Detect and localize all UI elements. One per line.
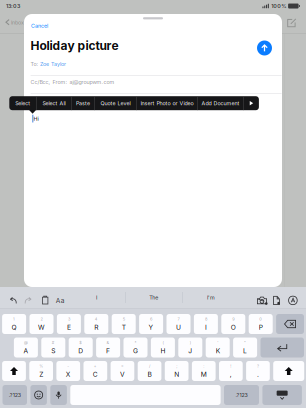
staticText: Select All: [42, 100, 65, 106]
staticText: ,: [230, 370, 232, 378]
button[interactable]: Select: [9, 96, 36, 110]
button[interactable]: Cc/Bcc, From: aj@groupwm.com: [30, 78, 116, 86]
button[interactable]: *: [123, 337, 147, 357]
button[interactable]: Quote Level: [95, 96, 136, 110]
button[interactable]: 0: [249, 314, 273, 334]
staticText: :: [203, 364, 204, 368]
staticText: J: [188, 347, 192, 355]
staticText: G: [133, 347, 138, 355]
button[interactable]: Numbers: [224, 385, 259, 405]
staticText: Insert Photo or Video: [140, 100, 193, 106]
button[interactable]: Select All: [37, 96, 71, 110]
staticText: *: [134, 340, 136, 345]
staticText: ;: [176, 364, 177, 368]
button[interactable]: Dictation: [50, 385, 67, 405]
button[interactable]: 5: [112, 314, 136, 334]
staticText: 13:03: [6, 3, 20, 9]
button[interactable]: Zoe Taylor: [39, 60, 67, 68]
staticText: X: [66, 370, 71, 378]
staticText: O: [231, 323, 236, 331]
button[interactable]: +: [83, 361, 107, 381]
button[interactable]: Cancel: [24, 21, 55, 31]
staticText: @: [24, 340, 28, 345]
staticText: K: [216, 347, 220, 355]
staticText: ": [244, 340, 246, 345]
button[interactable]: Camera: [256, 293, 268, 307]
button[interactable]: Hide keyboard: [262, 385, 302, 405]
staticText: S: [51, 347, 55, 355]
staticText: To:: [31, 61, 39, 67]
button[interactable]: @: [14, 337, 38, 357]
button[interactable]: -: [56, 361, 80, 381]
staticText: 4: [95, 317, 98, 321]
button[interactable]: ": [233, 337, 257, 357]
button[interactable]: Documents: [272, 293, 281, 307]
staticText: H: [160, 347, 165, 355]
button[interactable]: Emoji: [30, 385, 47, 405]
button[interactable]: :: [192, 361, 216, 381]
button[interactable]: Numbers: [2, 385, 27, 405]
staticText: &: [107, 340, 110, 345]
staticText: E: [67, 323, 71, 331]
staticText: 6: [150, 317, 152, 321]
button[interactable]: ?: [246, 361, 270, 381]
button[interactable]: $: [69, 337, 93, 357]
staticText: Y: [149, 323, 154, 331]
button[interactable]: ': [206, 337, 230, 357]
button[interactable]: Formatting: [54, 293, 66, 307]
button[interactable]: #: [41, 337, 65, 357]
button[interactable]: 7: [166, 314, 190, 334]
button[interactable]: %: [29, 361, 53, 381]
staticText: V: [120, 370, 125, 378]
staticText: Zoe Taylor: [40, 61, 66, 67]
button[interactable]: Delete: [276, 314, 304, 334]
staticText: N: [174, 370, 179, 378]
button[interactable]: /: [138, 361, 161, 381]
button[interactable]: 6: [139, 314, 163, 334]
button[interactable]: Paste: [40, 293, 51, 307]
button[interactable]: 1: [2, 314, 26, 334]
button[interactable]: Redo: [22, 293, 35, 307]
button[interactable]: 3: [57, 314, 81, 334]
staticText: Quote Level: [100, 100, 130, 106]
staticText: 100%: [271, 3, 286, 9]
button[interactable]: I'm: [183, 287, 240, 308]
staticText: 0: [259, 317, 262, 321]
button[interactable]: Insert Photo or Video: [137, 96, 197, 110]
staticText: =: [121, 364, 124, 368]
button[interactable]: More: [244, 96, 259, 110]
button[interactable]: ;: [165, 361, 188, 381]
staticText: 5: [123, 317, 125, 321]
button[interactable]: The: [125, 287, 182, 308]
button[interactable]: I: [68, 287, 125, 308]
button[interactable]: Markup: [288, 293, 297, 307]
staticText: !: [230, 364, 231, 368]
button[interactable]: 2: [29, 314, 53, 334]
button[interactable]: Send: [257, 40, 272, 55]
button[interactable]: Shift: [2, 361, 26, 381]
button[interactable]: 9: [221, 314, 245, 334]
staticText: Paste: [76, 100, 90, 106]
staticText: -: [67, 364, 69, 368]
button[interactable]: (: [151, 337, 175, 357]
button[interactable]: =: [111, 361, 134, 381]
staticText: .: [257, 370, 259, 378]
staticText: C: [93, 370, 98, 378]
button[interactable]: 4: [84, 314, 108, 334]
staticText: I'm: [207, 294, 215, 301]
staticText: Hi: [34, 116, 39, 122]
staticText: Z: [39, 370, 43, 378]
staticText: W: [38, 323, 45, 331]
button[interactable]: Add Document: [198, 96, 243, 110]
staticText: R: [94, 323, 98, 331]
button[interactable]: Return: [260, 337, 304, 357]
button[interactable]: 8: [194, 314, 218, 334]
button[interactable]: &: [96, 337, 120, 357]
button[interactable]: Paste: [72, 96, 94, 110]
button[interactable]: Shift: [273, 361, 304, 381]
button[interactable]: ): [178, 337, 202, 357]
button[interactable]: Undo: [6, 293, 19, 307]
staticText: /: [149, 364, 150, 368]
button[interactable]: !: [219, 361, 243, 381]
